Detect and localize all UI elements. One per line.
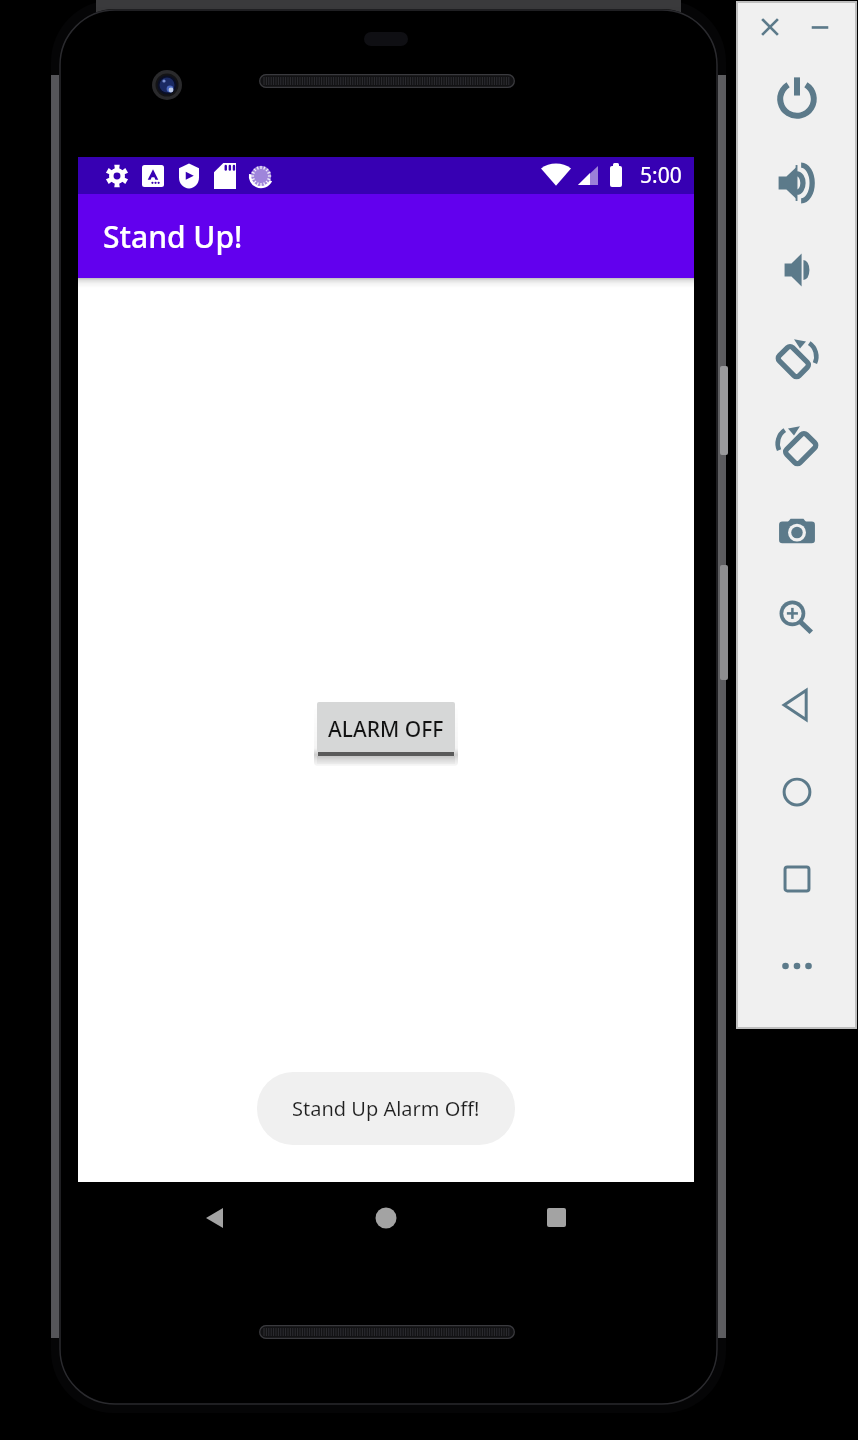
button[interactable]: ALARM OFF xyxy=(317,702,455,752)
button[interactable]: Home xyxy=(737,748,856,835)
staticText: 5:00 xyxy=(640,161,682,190)
button[interactable]: More xyxy=(737,922,856,1009)
button[interactable]: Home xyxy=(354,1182,418,1238)
button[interactable]: Minimize xyxy=(800,2,840,52)
button[interactable]: Back xyxy=(176,1182,240,1238)
staticText: Stand Up Alarm Off! xyxy=(292,1095,480,1122)
button[interactable]: Volume down xyxy=(737,226,856,313)
staticText: Stand Up! xyxy=(103,216,243,257)
button[interactable]: Back xyxy=(737,661,856,748)
button[interactable]: Close xyxy=(748,2,792,52)
button[interactable]: Rotate right xyxy=(737,400,856,487)
button[interactable]: Volume up xyxy=(737,139,856,226)
button[interactable]: Power xyxy=(737,52,856,139)
button[interactable]: Overview xyxy=(515,1182,579,1238)
button[interactable]: Zoom xyxy=(737,574,856,661)
staticText: ALARM OFF xyxy=(328,715,444,744)
button[interactable]: Overview xyxy=(737,835,856,922)
button[interactable]: Take screenshot xyxy=(737,487,856,574)
button[interactable]: Rotate left xyxy=(737,313,856,400)
